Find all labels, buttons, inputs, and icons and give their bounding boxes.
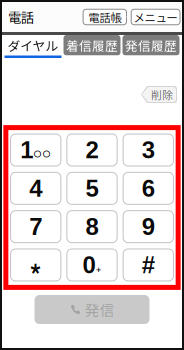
staticText: # xyxy=(142,252,155,278)
button[interactable]: ∗ xyxy=(11,249,61,281)
button[interactable]: 6 xyxy=(123,172,173,204)
button[interactable]: 発信 xyxy=(34,295,149,324)
button[interactable]: 4 xyxy=(11,172,61,204)
staticText: メニュー xyxy=(134,9,178,25)
staticText: ○○ xyxy=(33,148,51,160)
staticText: 電話 xyxy=(8,7,34,27)
button[interactable]: 7 xyxy=(11,211,61,243)
staticText: 2 xyxy=(85,137,98,163)
button[interactable]: 2 xyxy=(67,134,117,166)
staticText: 3 xyxy=(142,137,155,163)
button[interactable]: 8 xyxy=(67,211,117,243)
button[interactable]: メニュー xyxy=(131,9,180,25)
button[interactable]: 電話帳 xyxy=(83,9,126,25)
button[interactable]: 削除 xyxy=(141,86,177,103)
staticText: 5 xyxy=(85,175,98,202)
staticText: 発信履歴 xyxy=(125,36,177,54)
staticText: + xyxy=(95,263,101,275)
staticText: 9 xyxy=(142,213,155,240)
staticText: 削除 xyxy=(151,87,173,102)
button[interactable]: 発信履歴 xyxy=(122,35,179,58)
staticText: 8 xyxy=(85,213,98,240)
staticText: 6 xyxy=(142,175,155,202)
button[interactable]: # xyxy=(123,249,173,281)
staticText: 発信 xyxy=(84,299,114,320)
staticText: 7 xyxy=(29,213,42,240)
staticText: 電話帳 xyxy=(88,9,121,25)
button[interactable]: 0 xyxy=(67,249,117,281)
staticText: ダイヤル xyxy=(7,36,58,54)
button[interactable]: 1 xyxy=(11,134,61,166)
button[interactable]: 5 xyxy=(67,172,117,204)
staticText: ∗ xyxy=(29,248,42,282)
button[interactable]: ダイヤル xyxy=(4,35,61,58)
button[interactable]: 3 xyxy=(123,134,173,166)
staticText: 1 xyxy=(20,137,33,163)
staticText: 着信履歴 xyxy=(66,36,118,54)
staticText: 0 xyxy=(82,252,95,278)
staticText: 4 xyxy=(29,175,42,202)
button[interactable]: 着信履歴 xyxy=(63,35,120,58)
button[interactable]: 9 xyxy=(123,211,173,243)
